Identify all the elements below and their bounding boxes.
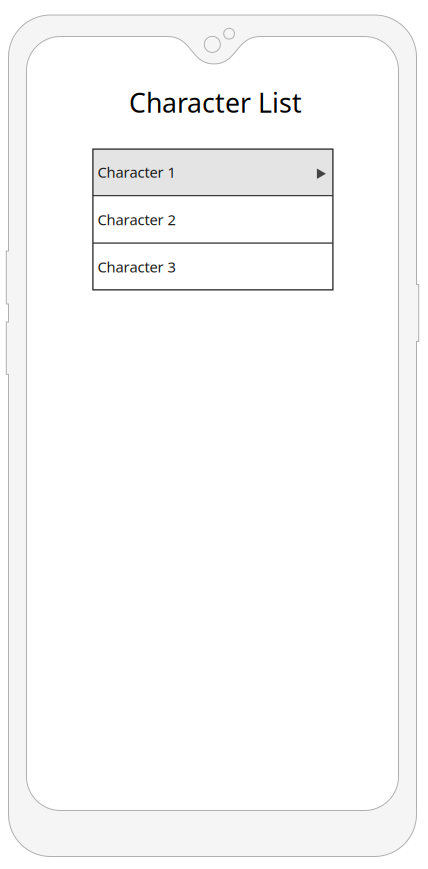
button[interactable]: Character 3: [93, 244, 333, 290]
staticText: Character 3: [97, 257, 175, 277]
staticText: Character 1: [97, 162, 175, 182]
button[interactable]: Character 1: [93, 149, 333, 195]
button[interactable]: Character 2: [93, 196, 333, 242]
staticText: Character 2: [97, 210, 175, 229]
staticText: Character List: [129, 85, 302, 120]
